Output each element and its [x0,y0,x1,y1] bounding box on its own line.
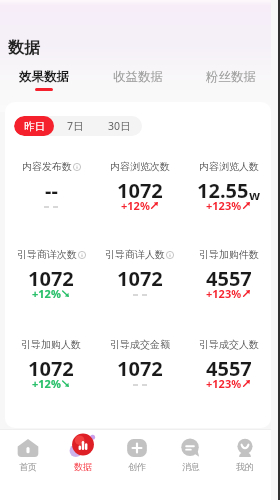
button[interactable]: 消息 [164,432,218,480]
staticText: 1072 [117,355,163,382]
staticText: 消息 [182,461,200,472]
staticText: w [249,186,261,204]
staticText: +12% [32,286,61,301]
button[interactable]: 昨日 [14,116,54,136]
staticText: 4557 [206,355,252,382]
staticText: 引导成交人数 [199,338,259,351]
button[interactable]: 引导商详人数 [95,248,184,310]
staticText: 内容发布数 [22,160,72,173]
staticText: 粉丝数据 [206,69,256,85]
button[interactable]: 内容浏览人数 [184,160,271,222]
button[interactable]: 引导成交人数 [184,338,271,400]
staticText: 引导加购件数 [199,248,259,261]
staticText: 效果数据 [19,69,69,85]
staticText: +12% [32,376,61,391]
button[interactable]: 引导加购人数 [7,338,95,400]
button[interactable]: 效果数据 [0,69,91,91]
staticText: 收益数据 [113,69,163,85]
button[interactable]: 我的 [218,432,272,480]
staticText: +123% [206,198,242,213]
staticText: 首页 [19,461,37,472]
staticText: 12.55 [197,177,249,204]
button[interactable]: 引导商详次数 [7,248,95,310]
staticText: +123% [206,376,242,391]
staticText: 引导商详人数 [105,248,165,261]
button[interactable]: 首页 [0,432,55,480]
staticText: 4557 [206,265,252,292]
staticText: 引导加购人数 [21,338,81,351]
staticText: 1072 [28,355,74,382]
staticText: 7日 [67,119,84,133]
staticText: +12% [121,198,150,213]
button[interactable]: 创作 [110,432,164,480]
staticText: 30日 [108,119,131,133]
staticText: 1072 [117,265,163,292]
button[interactable]: 数据 [55,432,110,480]
staticText: 内容浏览次数 [110,160,170,173]
button[interactable]: 内容发布数 [7,160,95,222]
button[interactable]: 30日 [96,116,142,136]
staticText: 昨日 [24,120,45,133]
staticText: 我的 [236,461,254,472]
button[interactable]: 内容浏览次数 [95,160,184,222]
staticText: 内容浏览人数 [199,160,259,173]
staticText: 创作 [128,461,146,472]
button[interactable]: 引导成交金额 [95,338,184,400]
staticText: 引导成交金额 [110,338,170,351]
staticText: 引导商详次数 [17,248,77,261]
staticText: +123% [206,286,242,301]
staticText: 1072 [28,265,74,292]
button[interactable]: 引导加购件数 [184,248,271,310]
staticText: 数据 [74,461,92,472]
button[interactable]: 粉丝数据 [184,69,277,88]
button[interactable]: 收益数据 [91,69,184,88]
button[interactable]: 7日 [54,116,96,136]
staticText: 1072 [117,177,163,204]
button[interactable]: 数据 [8,38,40,58]
staticText: 数据 [8,38,40,58]
staticText: -- [45,177,58,204]
